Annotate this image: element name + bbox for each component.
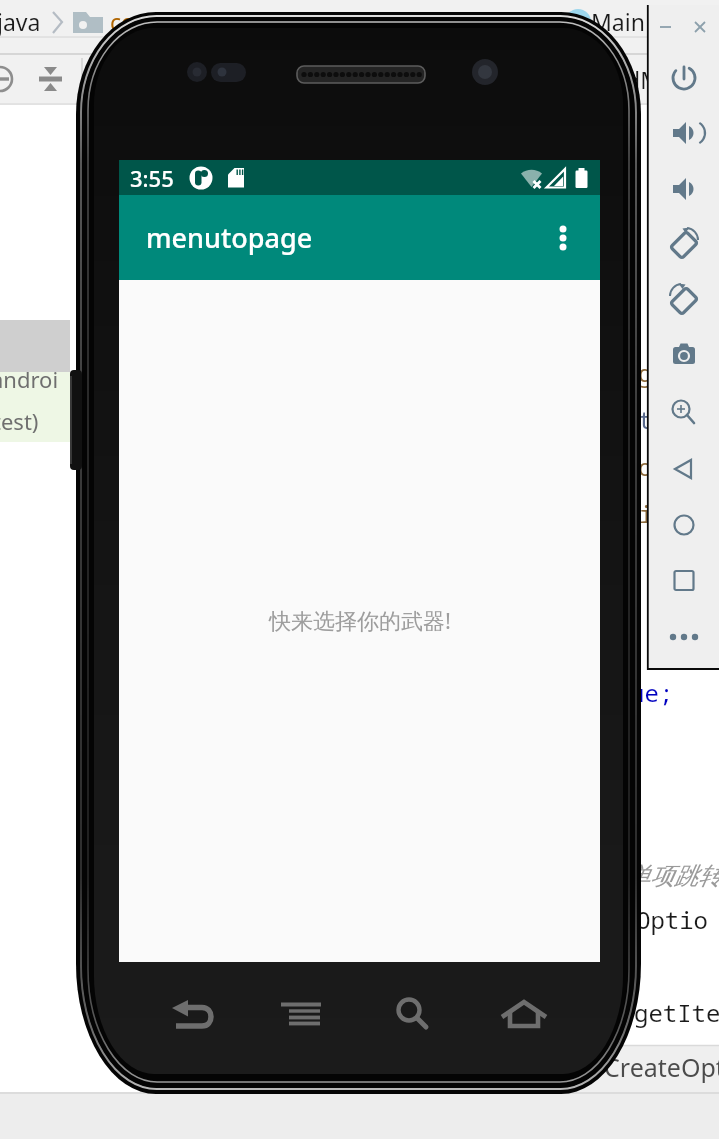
button[interactable]: More options bbox=[535, 210, 591, 266]
staticText: 3:55 bbox=[130, 163, 174, 193]
staticText: co bbox=[110, 6, 135, 37]
staticText: test) bbox=[0, 406, 39, 436]
staticText: menutopage bbox=[146, 219, 313, 256]
button[interactable]: Home bbox=[496, 985, 556, 1041]
button[interactable]: Menu bbox=[272, 985, 332, 1041]
staticText: g bbox=[638, 356, 653, 389]
staticText: ue; bbox=[630, 676, 674, 709]
staticText: CreateOpt bbox=[604, 1050, 719, 1084]
staticText: getIte bbox=[634, 996, 719, 1029]
staticText: t bbox=[638, 403, 653, 436]
staticText: i bbox=[639, 497, 654, 530]
staticText: java bbox=[0, 6, 41, 37]
staticText: o bbox=[638, 450, 653, 483]
staticText: dM bbox=[626, 64, 662, 95]
staticText: androi bbox=[0, 364, 59, 394]
staticText: Optio bbox=[636, 903, 708, 936]
staticText: Main bbox=[591, 6, 645, 37]
staticText: 快来选择你的武器! bbox=[269, 605, 451, 635]
button[interactable]: Emulator controls bbox=[647, 5, 719, 670]
staticText: 单项跳转 bbox=[626, 861, 719, 891]
button[interactable]: Search bbox=[382, 985, 442, 1041]
button[interactable]: Back bbox=[160, 985, 220, 1041]
